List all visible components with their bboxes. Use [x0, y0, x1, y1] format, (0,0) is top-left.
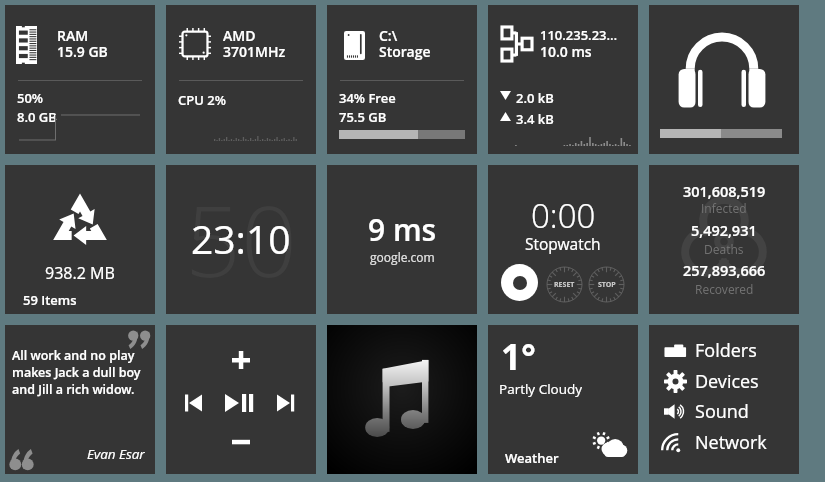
- staticText: RAM: [57, 26, 89, 45]
- button[interactable]: STOP: [588, 266, 625, 303]
- button[interactable]: Next track: [274, 390, 300, 416]
- staticText: google.com: [370, 249, 435, 265]
- button[interactable]: Volume down: [227, 428, 255, 456]
- button[interactable]: [649, 5, 799, 154]
- staticText: Evan Esar: [87, 445, 145, 463]
- staticText: Infected: [701, 200, 747, 216]
- button[interactable]: Volume up: [166, 325, 316, 474]
- staticText: 110.235.23…: [540, 26, 618, 44]
- button[interactable]: [327, 325, 477, 474]
- staticText: 0:00: [531, 193, 596, 238]
- staticText: 1°: [501, 333, 536, 381]
- staticText: Recovered: [695, 281, 754, 297]
- staticText: C:\: [379, 26, 398, 45]
- staticText: 59 Items: [23, 291, 77, 309]
- staticText: Stopwatch: [525, 233, 601, 254]
- staticText: STOP: [598, 280, 616, 290]
- button[interactable]: 301,608,519: [649, 165, 799, 314]
- staticText: Devices: [695, 369, 759, 394]
- staticText: 34% Free: [339, 89, 396, 107]
- staticText: 3701MHz: [223, 42, 286, 61]
- staticText: CPU 2%: [178, 91, 226, 109]
- button[interactable]: Devices: [649, 367, 799, 395]
- staticText: 75.5 GB: [339, 108, 387, 126]
- button[interactable]: 50: [166, 165, 316, 314]
- button[interactable]: All work and no play makes Jack a dull b…: [5, 325, 155, 474]
- staticText: Folders: [695, 338, 757, 363]
- button[interactable]: Start: [501, 264, 538, 301]
- button[interactable]: 110.235.23…: [488, 5, 638, 154]
- staticText: 23:10: [191, 212, 291, 265]
- button[interactable]: Play or pause: [223, 385, 259, 421]
- staticText: 5,492,931: [691, 221, 757, 241]
- staticText: 257,893,666: [683, 261, 766, 281]
- button[interactable]: RAM: [5, 5, 155, 154]
- staticText: Weather: [505, 449, 559, 467]
- button[interactable]: Folders: [649, 336, 799, 364]
- staticText: 15.9 GB: [57, 42, 108, 61]
- button[interactable]: C:\: [327, 5, 477, 154]
- button[interactable]: Network: [649, 428, 799, 456]
- staticText: 50%: [17, 89, 44, 107]
- staticText: 9 ms: [368, 209, 437, 250]
- staticText: 10.0 ms: [540, 42, 592, 61]
- staticText: 938.2 MB: [45, 262, 115, 284]
- staticText: AMD: [223, 26, 256, 45]
- staticText: Partly Cloudy: [499, 380, 583, 398]
- staticText: Network: [695, 430, 767, 455]
- staticText: 8.0 GB: [17, 108, 57, 126]
- button[interactable]: Volume up: [227, 346, 255, 374]
- staticText: Sound: [695, 399, 749, 424]
- staticText: 3.4 kB: [516, 110, 554, 128]
- staticText: 50: [185, 172, 297, 305]
- button[interactable]: Folders: [649, 325, 799, 474]
- button[interactable]: Previous track: [182, 390, 208, 416]
- staticText: RESET: [554, 280, 575, 290]
- button[interactable]: 0:00: [488, 165, 638, 314]
- staticText: 2.0 kB: [516, 89, 554, 107]
- button[interactable]: 9 ms: [327, 165, 477, 314]
- staticText: Storage: [379, 42, 431, 61]
- button[interactable]: AMD: [166, 5, 316, 154]
- staticText: Deaths: [704, 241, 744, 257]
- button[interactable]: Sound: [649, 397, 799, 425]
- staticText: 301,608,519: [683, 182, 766, 202]
- button[interactable]: 938.2 MB: [5, 165, 155, 314]
- button[interactable]: 1°: [488, 325, 638, 474]
- staticText: All work and no play makes Jack a dull b…: [12, 347, 146, 398]
- button[interactable]: RESET: [546, 266, 583, 303]
